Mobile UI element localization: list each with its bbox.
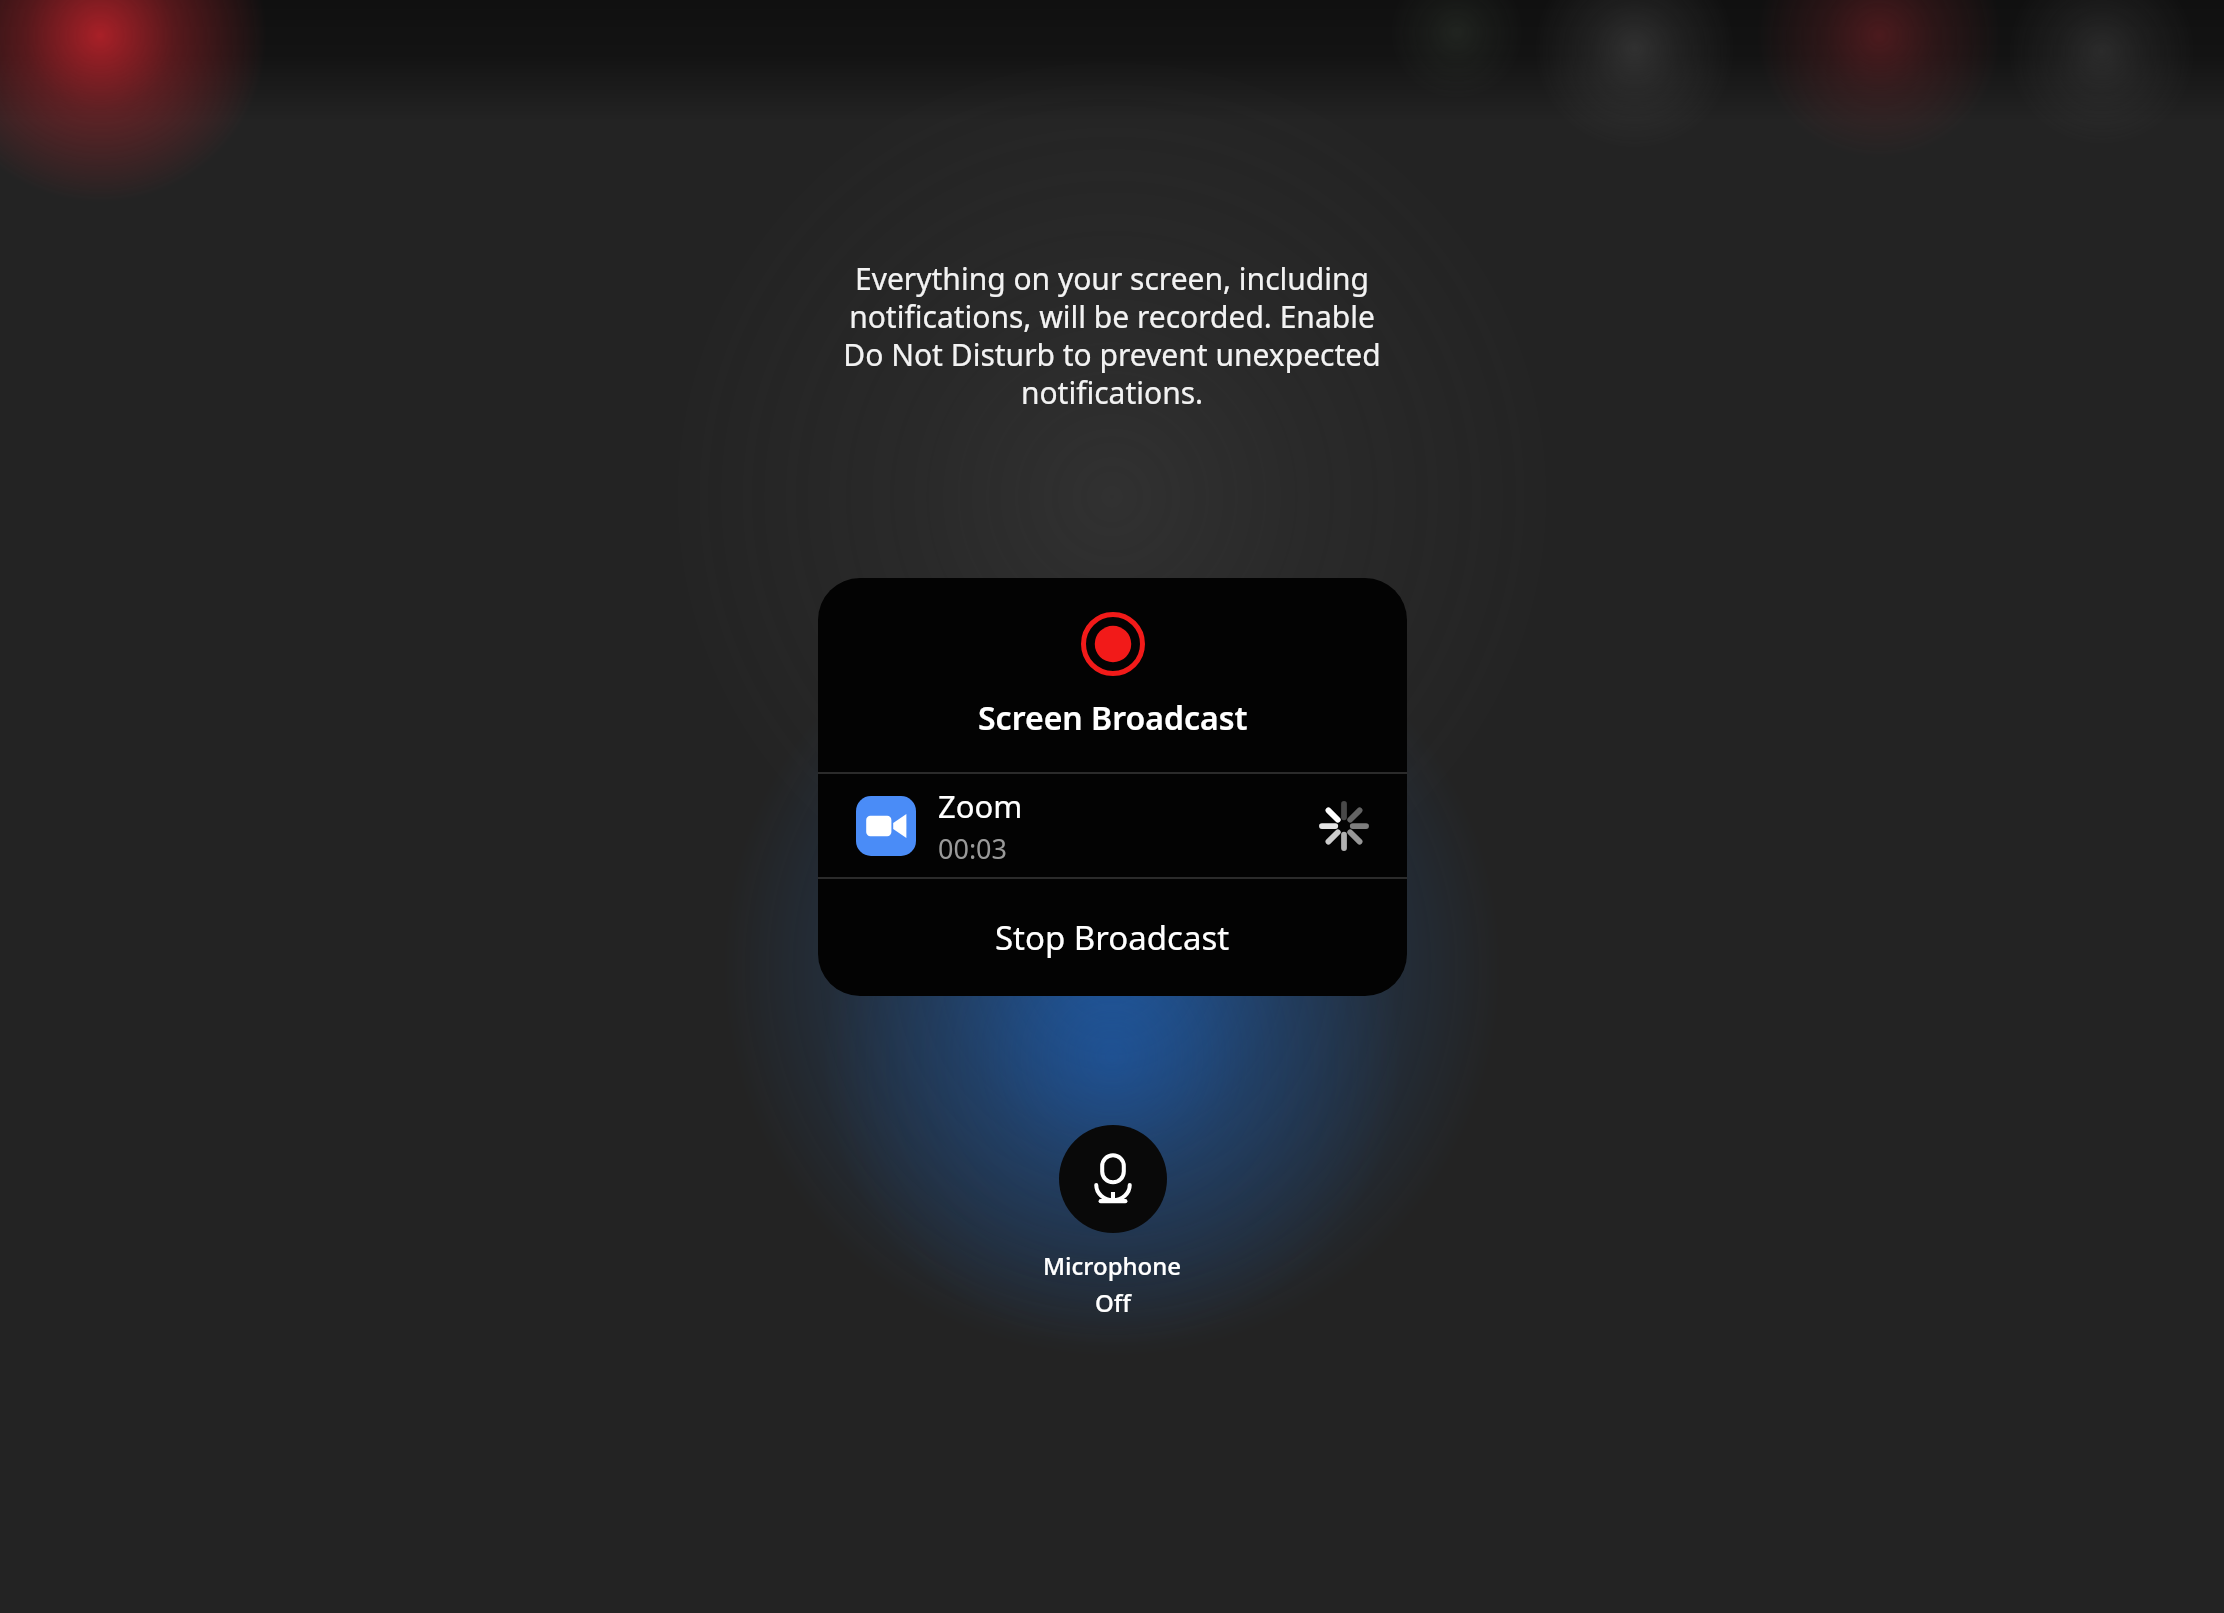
staticText: Everything on your screen, including not… (839, 258, 1385, 413)
staticText: Microphone (1043, 1249, 1182, 1282)
staticText: Zoom (938, 785, 1023, 827)
staticText: 00:03 (938, 830, 1008, 867)
staticText: Off (1095, 1286, 1131, 1319)
button[interactable]: Stop Broadcast (818, 879, 1407, 996)
staticText: Stop Broadcast (995, 915, 1230, 960)
button[interactable]: Zoom (818, 774, 1407, 877)
button[interactable]: Microphone Off (1043, 1125, 1182, 1319)
staticText: Screen Broadcast (978, 696, 1248, 740)
